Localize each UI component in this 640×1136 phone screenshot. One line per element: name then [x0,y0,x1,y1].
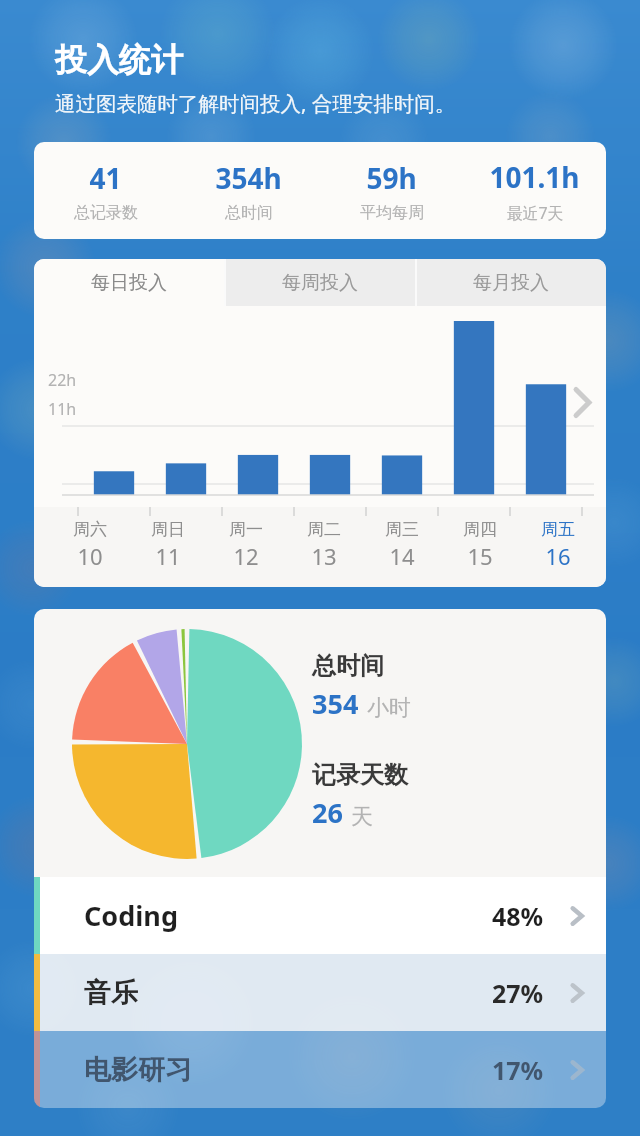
staticText: 59h [366,159,417,197]
staticText: 17% [492,1053,544,1087]
staticText: 13 [311,541,337,571]
staticText: 最近7天 [506,202,564,224]
staticText: 48% [492,899,544,933]
staticText: 11 [155,541,181,571]
other: Details for 音乐 [562,978,592,1008]
staticText: 天 [351,803,373,831]
staticText: 总时间 [225,203,273,223]
staticText: 平均每周 [360,203,424,223]
staticText: 周六 [73,519,107,540]
other: Details for 电影研习 [562,1055,592,1085]
staticText: 总记录数 [74,203,138,223]
staticText: 周日 [151,519,185,540]
staticText: 101.1h [489,158,580,196]
other: Details for Coding [562,901,592,931]
staticText: 周二 [307,519,341,540]
staticText: 小时 [367,694,411,722]
staticText: 总时间 [312,651,384,681]
staticText: 11h [48,398,77,420]
staticText: 通过图表随时了解时间投入, 合理安排时间。 [55,89,456,117]
staticText: 音乐 [84,976,138,1010]
staticText: 14 [389,541,415,571]
staticText: 投入统计 [55,40,183,80]
staticText: 26 [312,794,343,831]
button[interactable]: 每周投入 [224,259,415,306]
staticText: 每月投入 [473,271,549,295]
staticText: 16 [545,541,571,571]
staticText: 41 [89,159,122,197]
staticText: 周五 [541,519,575,540]
staticText: 354 [312,685,359,722]
staticText: 22h [48,369,77,391]
button[interactable]: 电影研习 [34,1031,606,1108]
staticText: 记录天数 [312,760,408,790]
staticText: 10 [77,541,103,571]
staticText: 每日投入 [91,271,167,295]
staticText: 周一 [229,519,263,540]
staticText: Coding [84,897,178,934]
staticText: 每周投入 [282,271,358,295]
button[interactable]: Coding [34,877,606,954]
staticText: 27% [492,976,544,1010]
staticText: 周三 [385,519,419,540]
button[interactable]: 每月投入 [415,259,606,306]
staticText: 15 [467,541,493,571]
staticText: 354h [215,159,282,197]
button[interactable]: 每日投入 [34,259,224,306]
staticText: 12 [233,541,259,571]
staticText: 电影研习 [84,1053,192,1087]
button[interactable]: 音乐 [34,954,606,1031]
staticText: 周四 [463,519,497,540]
